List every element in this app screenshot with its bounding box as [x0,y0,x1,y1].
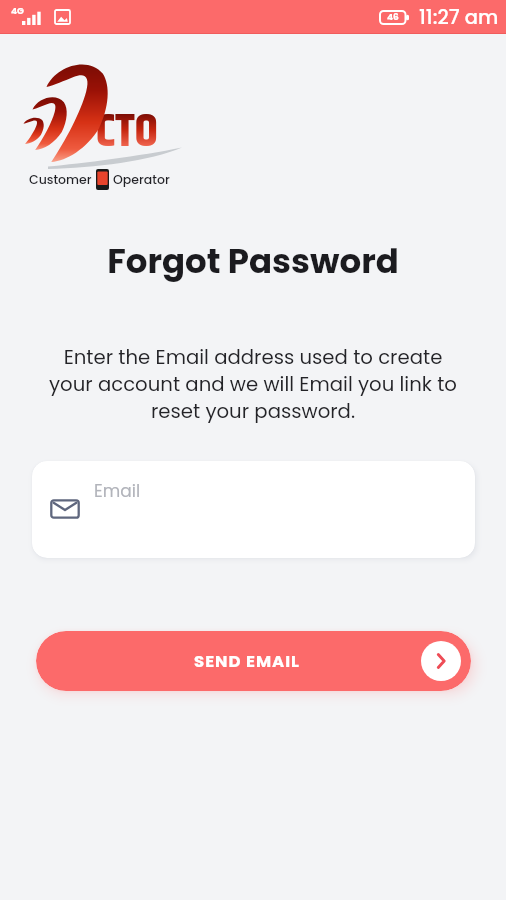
staticText: Enter the Email address used to create y… [0,343,506,425]
staticText: 4G [11,5,24,18]
staticText: Forgot Password [0,237,506,285]
staticText: Customer [29,171,92,188]
button[interactable]: Email [32,461,475,558]
staticText: 11:27 am [419,4,499,31]
button[interactable]: SEND EMAIL [36,631,471,691]
staticText: Operator [113,171,170,188]
staticText: SEND EMAIL [194,650,300,673]
staticText: 46 [387,11,399,24]
staticText: CTO [96,97,158,169]
staticText: Email [94,479,141,503]
other: Submit [421,641,461,681]
